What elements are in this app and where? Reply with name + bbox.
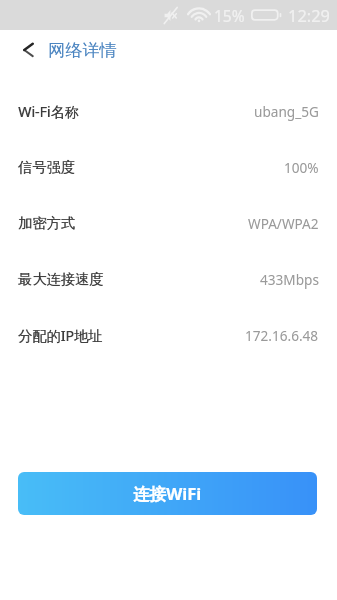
button[interactable]: 信号强度 bbox=[0, 140, 337, 196]
staticText: 最大连接速度 bbox=[18, 270, 104, 288]
staticText: 信号强度 bbox=[18, 158, 75, 176]
button[interactable]: Wi-Fi名称 bbox=[0, 84, 337, 140]
staticText: 433Mbps bbox=[260, 270, 319, 289]
staticText: 加密方式 bbox=[18, 214, 75, 232]
staticText: 信号强度 bbox=[18, 158, 75, 176]
staticText: Wi-Fi名称 bbox=[18, 102, 79, 121]
staticText: 网络详情 bbox=[48, 39, 117, 61]
staticText: Wi-Fi名称 bbox=[18, 102, 79, 121]
staticText: 最大连接速度 bbox=[18, 270, 104, 288]
staticText: 分配的IP地址 bbox=[18, 326, 103, 345]
button[interactable]: 加密方式 bbox=[0, 196, 337, 252]
staticText: 15% bbox=[214, 5, 245, 26]
button[interactable]: 分配的IP地址 bbox=[0, 308, 337, 364]
staticText: 100% bbox=[284, 158, 319, 177]
staticText: 172.16.6.48 bbox=[245, 326, 319, 345]
staticText: 分配的IP地址 bbox=[18, 326, 103, 345]
staticText: 连接WiFi bbox=[133, 482, 202, 505]
button[interactable]: 最大连接速度 bbox=[0, 252, 337, 308]
button[interactable]: 连接WiFi bbox=[18, 472, 317, 515]
staticText: ubang_5G bbox=[254, 102, 319, 121]
staticText: 加密方式 bbox=[18, 214, 75, 232]
staticText: WPA/WPA2 bbox=[248, 214, 319, 233]
staticText: 12:29 bbox=[288, 4, 330, 26]
button[interactable]: Back bbox=[8, 30, 49, 69]
